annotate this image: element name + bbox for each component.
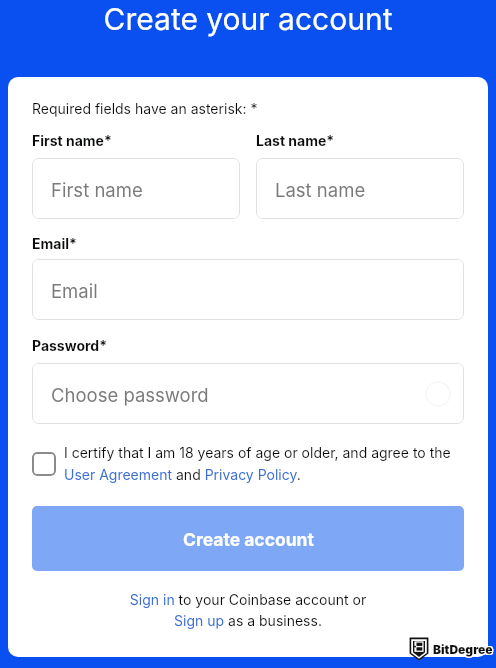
button[interactable]: Choose password <box>32 363 464 424</box>
staticText: Password* <box>32 337 108 354</box>
staticText: BitDegree <box>434 643 494 658</box>
staticText: Create account <box>183 529 314 550</box>
staticText: BitDegree <box>434 642 494 657</box>
button[interactable]: I certify that I am 18 years of age or o… <box>32 452 56 476</box>
staticText: BitDegree <box>432 643 492 658</box>
staticText: BitDegree <box>432 642 492 657</box>
staticText: BitDegree <box>433 643 493 658</box>
staticText: Required fields have an asterisk: * <box>32 100 258 117</box>
staticText: BitDegree <box>433 642 493 657</box>
staticText: I certify that I am 18 years of age or o… <box>64 444 464 483</box>
button[interactable]: Email <box>32 259 464 320</box>
other: Show password <box>426 382 450 406</box>
staticText: BitDegree <box>433 642 493 657</box>
button[interactable]: First name <box>32 158 240 219</box>
staticText: BitDegree <box>433 641 493 656</box>
staticText: Last name <box>275 179 366 201</box>
staticText: BitDegree <box>434 641 494 656</box>
staticText: Email* <box>32 235 77 252</box>
staticText: First name <box>51 179 143 201</box>
staticText: First name* <box>32 132 112 149</box>
staticText: BitDegree <box>432 641 492 656</box>
staticText: Email <box>51 280 98 302</box>
button[interactable]: Create account <box>32 506 464 571</box>
staticText: Last name* <box>256 132 335 149</box>
button[interactable]: Last name <box>256 158 464 219</box>
staticText: Choose password <box>51 384 209 406</box>
staticText: Create your account <box>0 1 496 37</box>
staticText: Sign in to your Coinbase account or Sign… <box>123 591 373 629</box>
